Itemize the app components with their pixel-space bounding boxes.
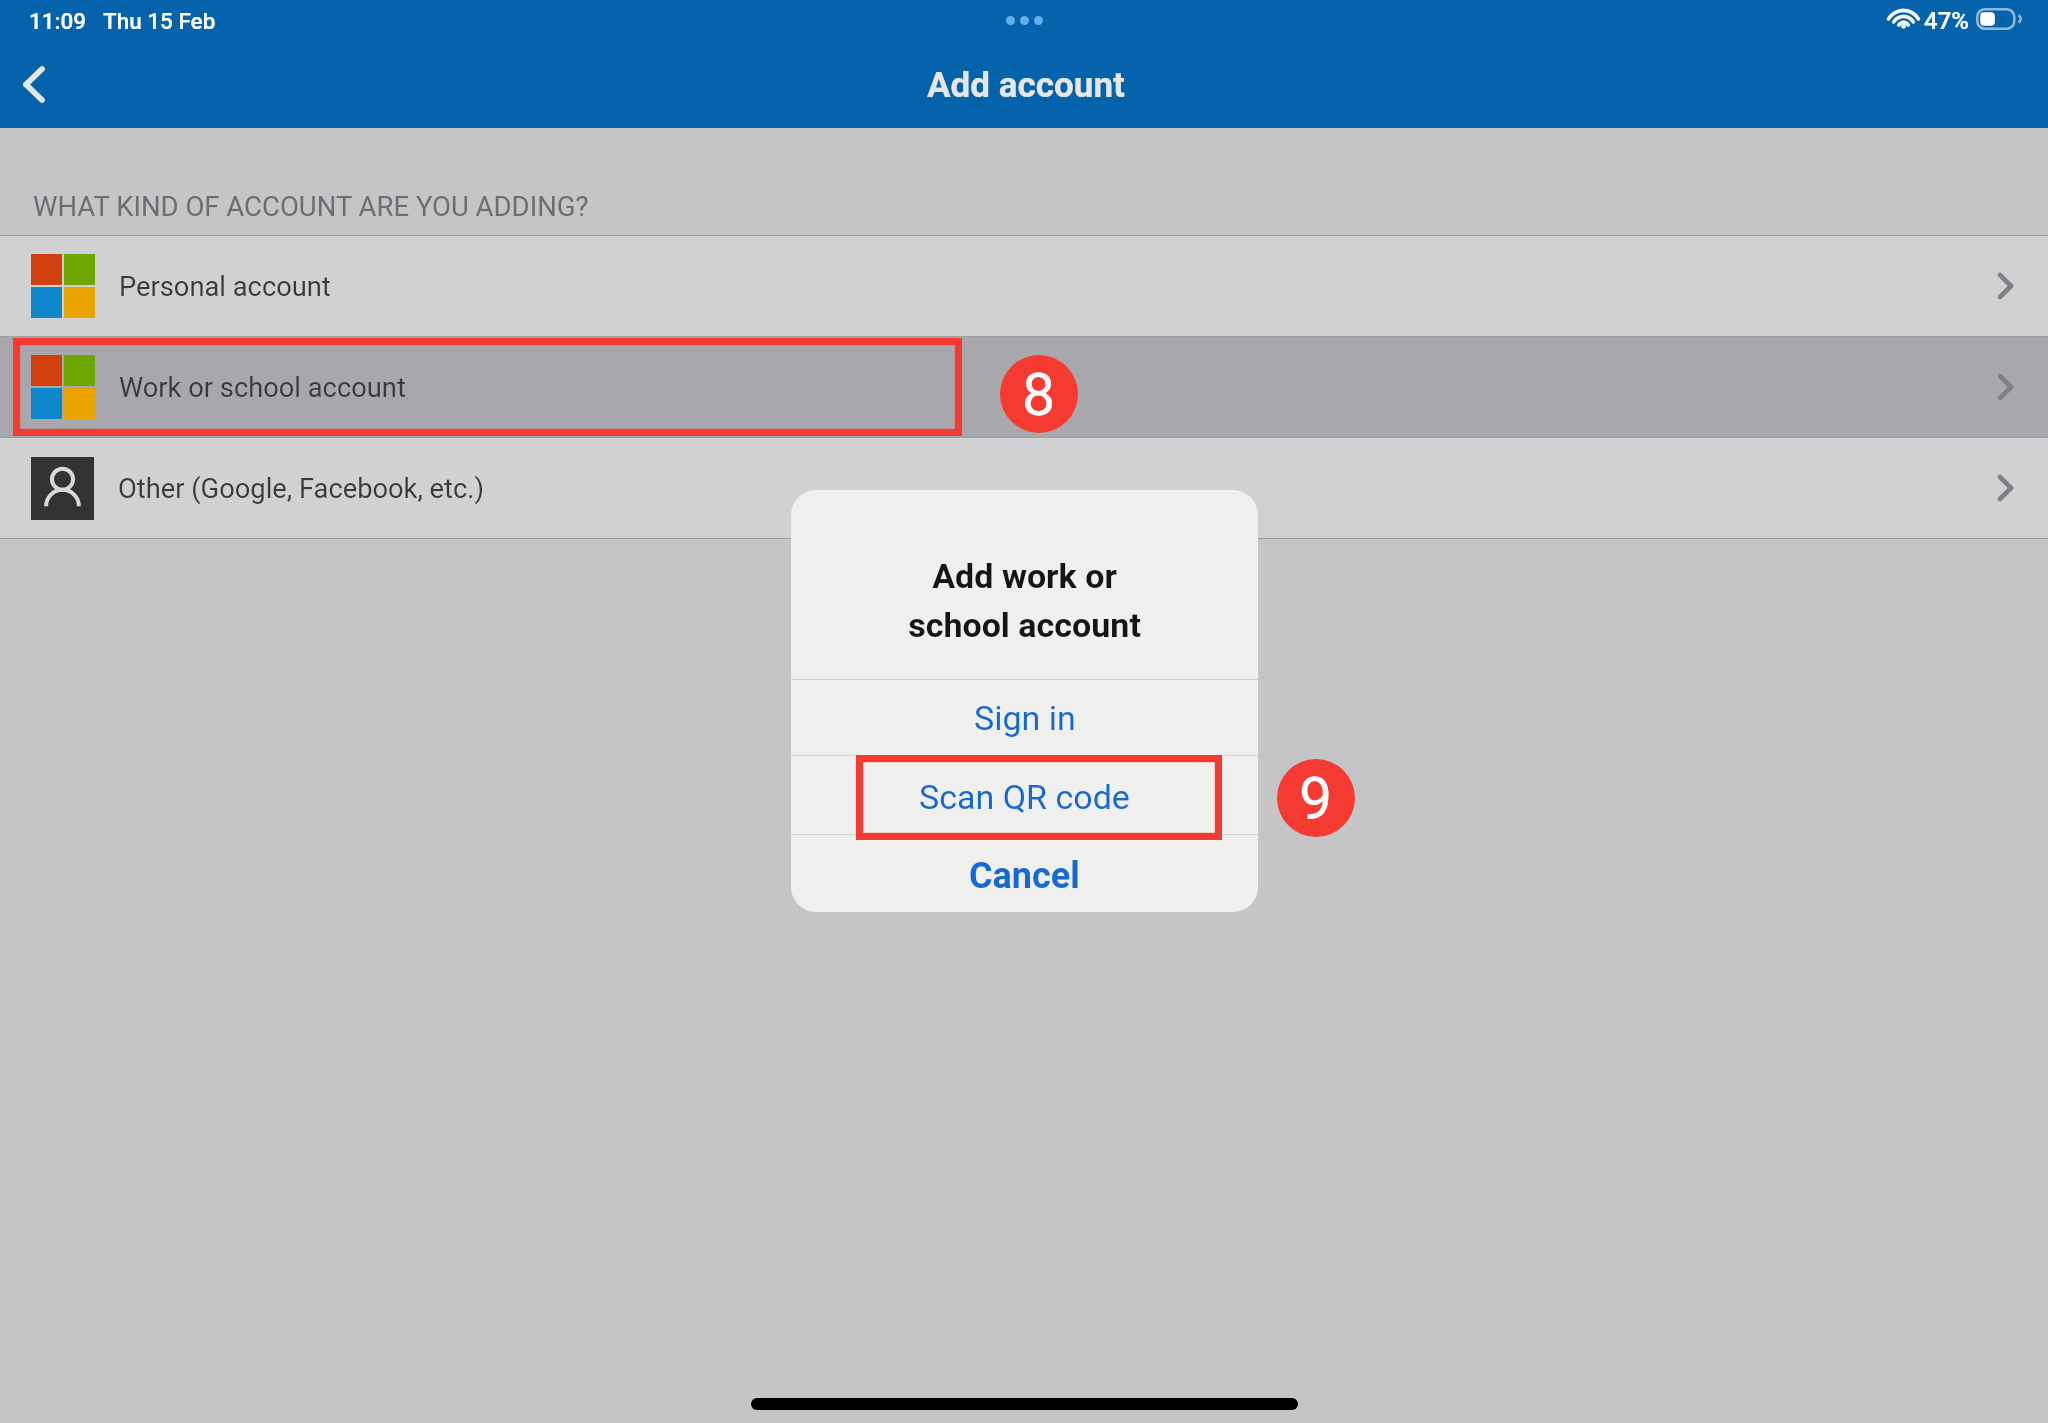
staticText: Cancel [969, 855, 1080, 897]
staticText: WHAT KIND OF ACCOUNT ARE YOU ADDING? [33, 190, 589, 222]
button[interactable]: Other (Google, Facebook, etc.) [0, 438, 2048, 538]
staticText: Other (Google, Facebook, etc.) [118, 473, 484, 505]
button[interactable]: Personal account [0, 236, 2048, 336]
staticText: 47% [1924, 7, 1969, 35]
button[interactable]: Sign in [791, 680, 1258, 755]
button[interactable]: Back [2, 47, 66, 121]
staticText: Personal account [119, 271, 331, 303]
button[interactable]: Work or school account [0, 337, 2048, 437]
staticText: 11:09 [29, 8, 87, 34]
staticText: Add work or school account [908, 556, 1141, 645]
staticText: Add account [927, 65, 1125, 106]
button[interactable]: Scan QR code [791, 756, 1258, 834]
staticText: 8 [1022, 360, 1056, 429]
staticText: Scan QR code [919, 777, 1130, 817]
staticText: Work or school account [119, 372, 406, 404]
staticText: Sign in [974, 698, 1076, 738]
staticText: 9 [1299, 764, 1333, 833]
button[interactable]: Cancel [791, 835, 1258, 912]
staticText: Thu 15 Feb [103, 8, 216, 34]
